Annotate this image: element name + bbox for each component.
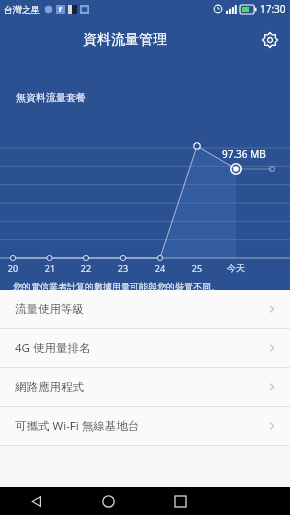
button[interactable]: 4G 使用量排名 [0, 329, 290, 367]
staticText: 23 [110, 262, 136, 274]
staticText: 22 [73, 262, 99, 274]
staticText: 今天 [223, 262, 249, 273]
staticText: 流量使用等級 [15, 302, 84, 316]
button[interactable]: Recent apps [144, 487, 217, 515]
button[interactable]: Back [0, 487, 72, 515]
staticText: 台灣之星 [4, 4, 40, 15]
staticText: 您的電信業者計算的數據用量可能與您的裝置不同。 [13, 281, 220, 292]
staticText: 17:30 [260, 2, 286, 16]
staticText: 21 [37, 262, 63, 274]
staticText: 25 [184, 262, 210, 274]
staticText: 97.36 MB [222, 147, 266, 161]
staticText: 無資料流量套餐 [16, 91, 86, 104]
staticText: 可攜式 Wi-Fi 無線基地台 [15, 418, 140, 434]
staticText: 24 [147, 262, 173, 274]
staticText: 20 [0, 262, 26, 274]
button[interactable]: 可攜式 Wi-Fi 無線基地台 [0, 407, 290, 445]
button[interactable]: 網路應用程式 [0, 368, 290, 406]
staticText: f [59, 5, 62, 14]
staticText: 4G 使用量排名 [15, 340, 91, 356]
staticText: 網路應用程式 [15, 380, 84, 394]
button[interactable]: 流量使用等級 [0, 290, 290, 328]
button[interactable]: Settings [250, 20, 290, 60]
staticText: 資料流量管理 [83, 31, 167, 49]
button[interactable]: Home [72, 487, 144, 515]
